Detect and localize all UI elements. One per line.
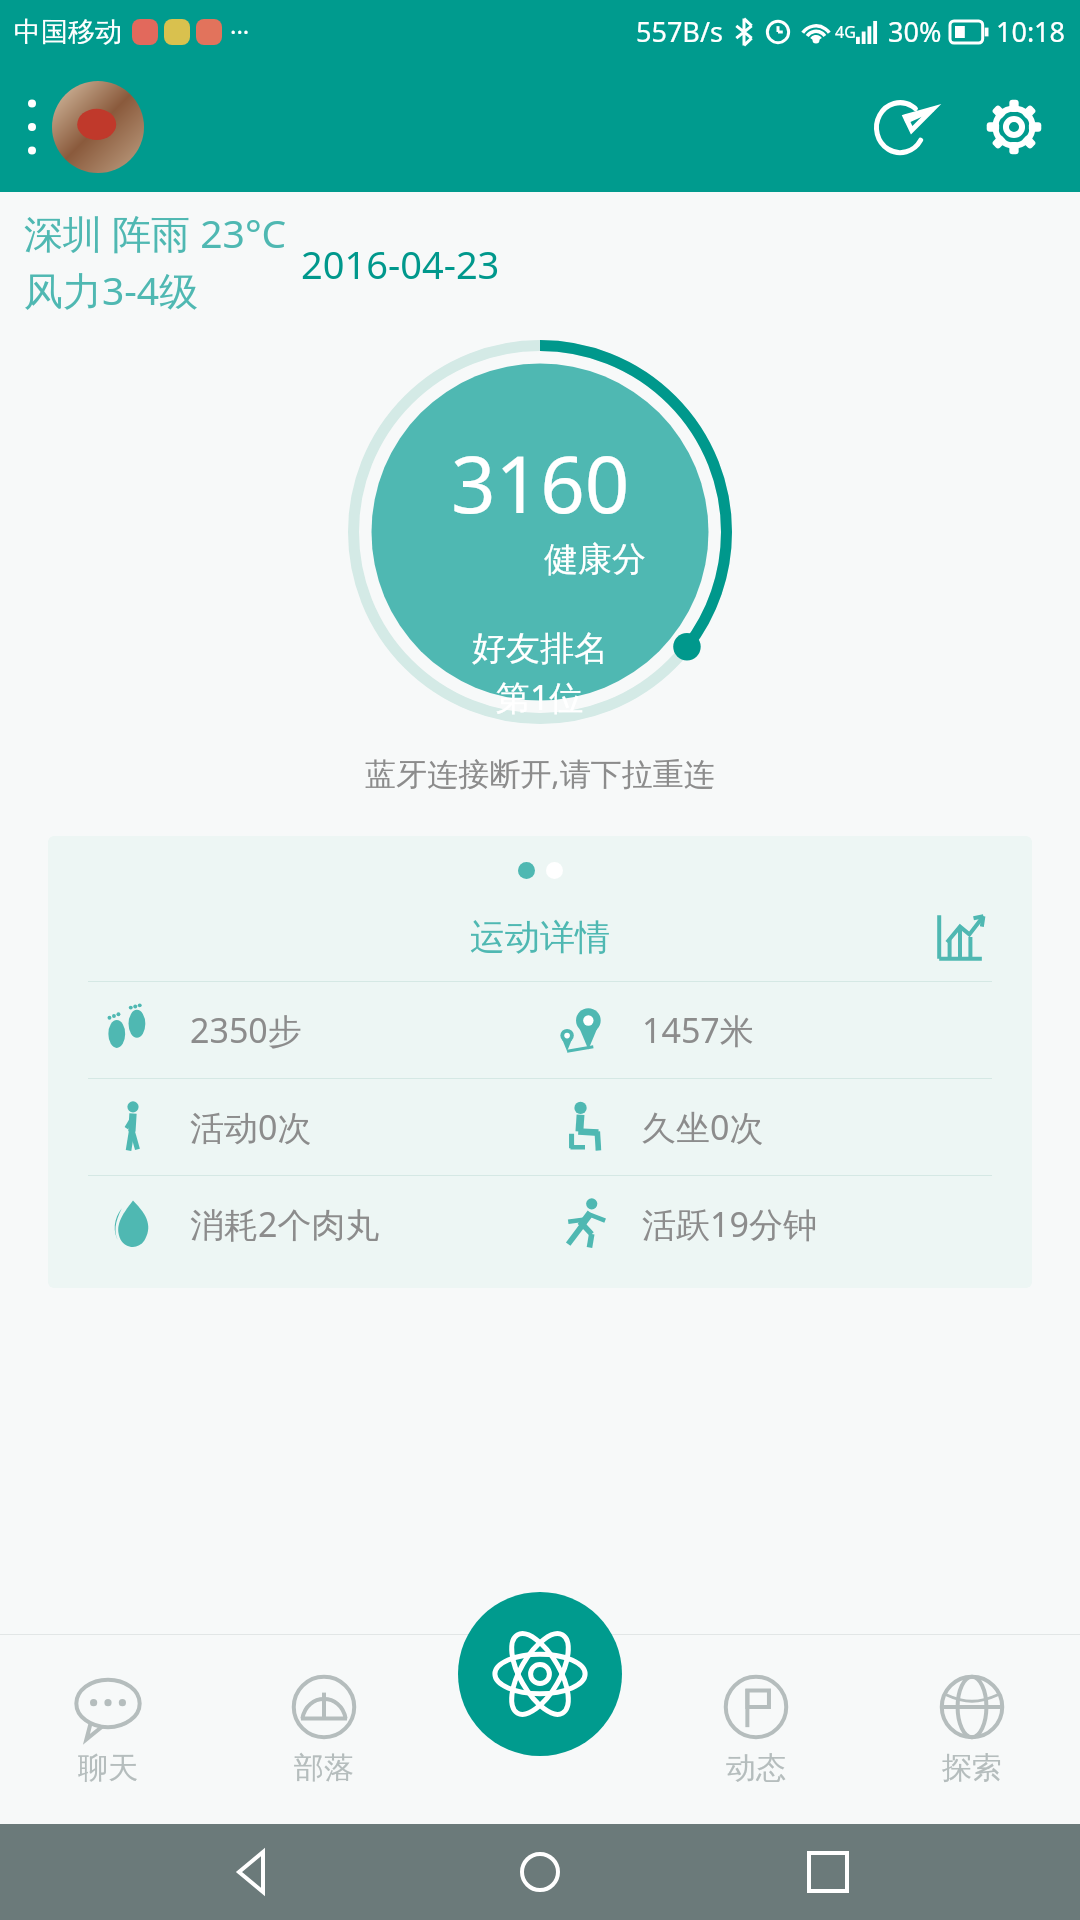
staticText: 557B/s bbox=[636, 13, 723, 50]
staticText: 久坐0次 bbox=[642, 1104, 764, 1150]
staticText: 运动详情 bbox=[470, 915, 610, 959]
staticText: 动态 bbox=[726, 1749, 786, 1787]
staticText: 4G bbox=[835, 21, 856, 43]
staticText: 聊天 bbox=[78, 1749, 138, 1787]
staticText: 深圳 阵雨 23°C bbox=[24, 206, 287, 259]
staticText: 健康分 bbox=[544, 538, 646, 581]
button[interactable]: Settings bbox=[966, 79, 1062, 175]
staticText: 2016-04-23 bbox=[301, 238, 500, 290]
button[interactable]: Back bbox=[218, 1837, 288, 1907]
staticText: 活跃19分钟 bbox=[642, 1201, 817, 1247]
button[interactable]: Profile bbox=[52, 81, 144, 173]
staticText: 活动0次 bbox=[190, 1104, 312, 1150]
staticText: 3160 bbox=[451, 430, 630, 536]
button[interactable]: 动态 bbox=[648, 1634, 864, 1824]
staticText: 1457米 bbox=[642, 1007, 754, 1053]
button[interactable]: Share bbox=[856, 79, 952, 175]
button[interactable]: 探索 bbox=[864, 1634, 1080, 1824]
button[interactable]: Chart bbox=[928, 905, 992, 969]
staticText: 蓝牙连接断开,请下拉重连 bbox=[0, 752, 1080, 794]
button[interactable]: 运动详情 bbox=[48, 836, 1032, 1288]
staticText: 探索 bbox=[942, 1749, 1002, 1787]
staticText: 2350步 bbox=[190, 1007, 302, 1053]
button[interactable]: 聊天 bbox=[0, 1634, 216, 1824]
staticText: 部落 bbox=[294, 1749, 354, 1787]
button[interactable]: More bbox=[18, 87, 46, 167]
staticText: 风力3-4级 bbox=[24, 263, 199, 316]
staticText: 好友排名 bbox=[472, 627, 608, 670]
button[interactable]: 部落 bbox=[216, 1634, 432, 1824]
staticText: 消耗2个肉丸 bbox=[190, 1201, 380, 1247]
button[interactable]: Recents bbox=[793, 1837, 863, 1907]
button[interactable]: Home bbox=[505, 1837, 575, 1907]
staticText: ··· bbox=[230, 15, 250, 48]
staticText: 10:18 bbox=[996, 13, 1066, 50]
staticText: 第1位 bbox=[496, 674, 584, 720]
button[interactable]: Home bbox=[458, 1592, 622, 1756]
staticText: 中国移动 bbox=[14, 15, 122, 49]
staticText: 30% bbox=[888, 13, 942, 50]
